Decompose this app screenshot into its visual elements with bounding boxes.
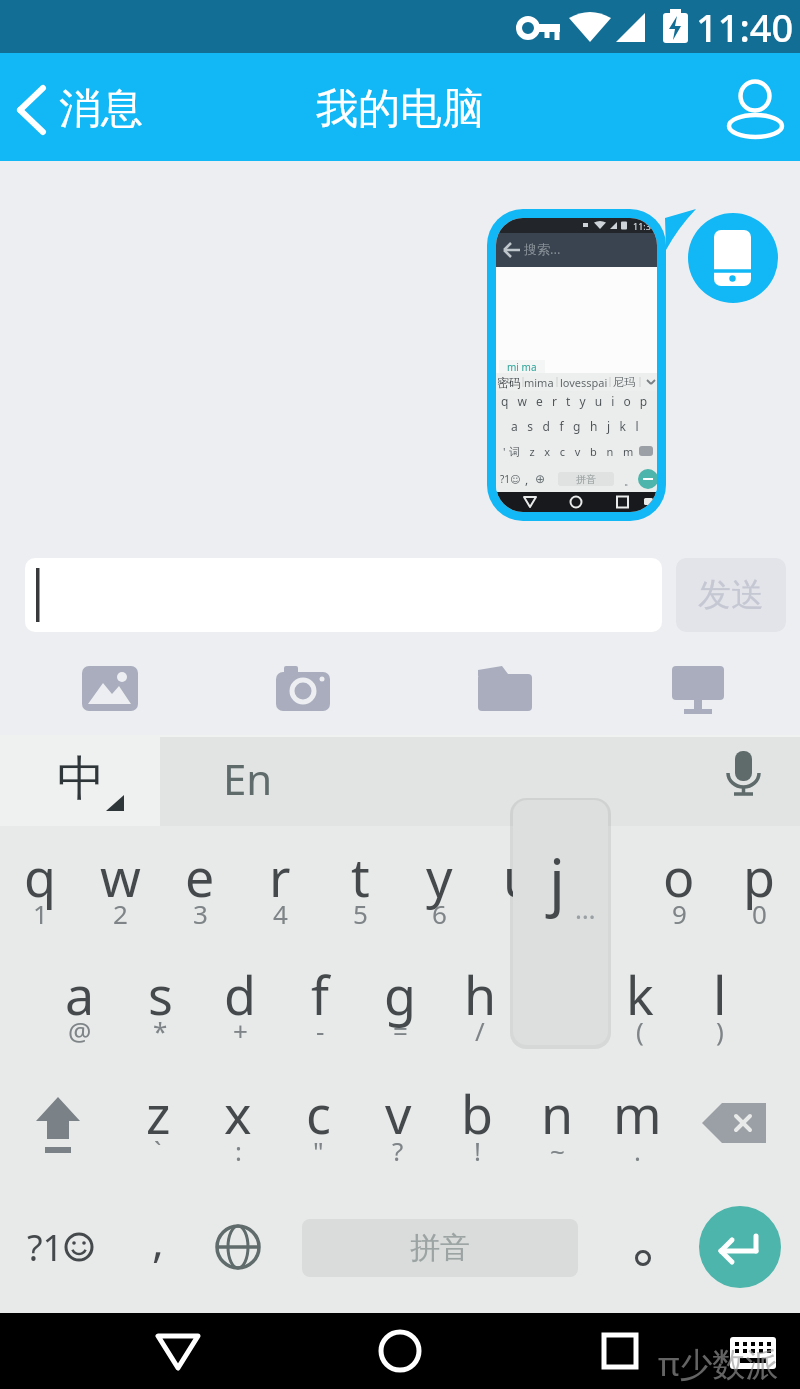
button[interactable]: 拼音 (302, 1219, 578, 1277)
staticText: , (525, 471, 529, 487)
staticText: ⊕ (535, 472, 546, 486)
staticText: b (461, 1078, 493, 1149)
staticText: 中 (57, 749, 105, 809)
staticText: j (549, 838, 565, 922)
staticText: l (713, 959, 727, 1030)
staticText: ( (636, 1013, 644, 1047)
staticText: q w e r t y u i o p (501, 393, 651, 409)
staticText: / (475, 1013, 485, 1047)
staticText: + (233, 1013, 248, 1047)
staticText: 2 (113, 896, 128, 930)
staticText: m (613, 1078, 662, 1149)
staticText: mima (524, 375, 554, 390)
staticText: 11:40 (696, 1, 794, 51)
staticText: u (503, 841, 536, 912)
staticText: ! (474, 1133, 481, 1167)
staticText: 我的电脑 (316, 83, 484, 136)
staticText: π少数派 (658, 1341, 779, 1386)
staticText: ?1☺ (500, 472, 521, 486)
button[interactable] (570, 1313, 670, 1389)
staticText: 8 (592, 896, 607, 930)
staticText: " (313, 1133, 324, 1167)
staticText: 3 (193, 896, 208, 930)
button[interactable] (700, 735, 790, 826)
staticText: a (65, 959, 95, 1030)
staticText: En (223, 750, 273, 807)
staticText: ?1 (27, 1223, 64, 1272)
staticText: 5 (353, 896, 368, 930)
staticText: , (152, 1210, 164, 1270)
staticText: q (24, 841, 56, 912)
staticText: - (316, 1013, 325, 1047)
button[interactable] (698, 1087, 782, 1167)
staticText: 9 (672, 896, 687, 930)
staticText: . (634, 1133, 641, 1167)
staticText: k (626, 959, 654, 1030)
staticText: 搜索... (524, 240, 561, 258)
staticText: 0 (752, 896, 767, 930)
staticText: f (311, 959, 329, 1030)
staticText: o (663, 841, 695, 912)
button[interactable] (128, 1313, 228, 1389)
staticText: z (146, 1078, 171, 1149)
staticText: 拼音 (410, 1229, 470, 1267)
staticText: s (148, 959, 173, 1030)
staticText: x (224, 1078, 252, 1149)
staticText: * (153, 1013, 168, 1047)
staticText: t (351, 841, 370, 912)
staticText: ) (716, 1013, 724, 1047)
staticText: 尼玛 (613, 375, 635, 389)
staticText: n (541, 1078, 574, 1149)
staticText: 6 (432, 896, 447, 930)
staticText: 。 (624, 475, 634, 488)
button[interactable]: 中 (0, 735, 160, 826)
button[interactable]: ?1 (10, 1205, 120, 1295)
staticText: @ (68, 1013, 92, 1047)
button[interactable] (262, 650, 342, 726)
staticText: ` (154, 1133, 162, 1167)
staticText: p (743, 841, 775, 912)
staticText: 7 (512, 896, 527, 930)
staticText: h (464, 959, 497, 1030)
button[interactable] (688, 213, 778, 303)
button[interactable] (464, 650, 544, 726)
button[interactable] (722, 1327, 782, 1377)
staticText: r (269, 841, 291, 912)
button[interactable] (70, 650, 150, 726)
staticText: 1 (33, 896, 48, 930)
button[interactable] (722, 66, 794, 148)
staticText: mi ma (507, 360, 537, 373)
staticText: 发送 (698, 574, 764, 616)
button[interactable]: 消息 (0, 53, 160, 161)
staticText: 11:3 (633, 220, 651, 232)
button[interactable] (350, 1313, 450, 1389)
staticText: y (426, 841, 453, 912)
staticText: w (100, 841, 141, 912)
staticText: ~ (550, 1133, 565, 1167)
staticText: : (235, 1133, 242, 1167)
button[interactable]: 11:3 (487, 209, 666, 521)
staticText: '词 z x c v b n m (503, 444, 637, 459)
staticText: 4 (273, 896, 288, 930)
button[interactable] (18, 1079, 98, 1169)
staticText: a s d f g h j k l (511, 418, 642, 434)
staticText: … (575, 891, 596, 926)
button[interactable] (25, 558, 662, 632)
button[interactable] (198, 1207, 278, 1287)
staticText: c (306, 1078, 331, 1149)
button[interactable] (699, 1206, 781, 1288)
staticText: 消息 (59, 83, 143, 136)
staticText: 拼音 (576, 473, 596, 486)
button[interactable]: En (160, 735, 340, 826)
staticText: 密码 (497, 375, 521, 390)
staticText: lovesspai (560, 375, 608, 390)
staticText: d (224, 959, 256, 1030)
button[interactable] (658, 650, 738, 726)
staticText: g (384, 959, 416, 1030)
button[interactable]: 发送 (676, 558, 786, 632)
staticText: = (393, 1013, 408, 1047)
staticText: ? (392, 1133, 404, 1167)
staticText: v (385, 1078, 412, 1149)
